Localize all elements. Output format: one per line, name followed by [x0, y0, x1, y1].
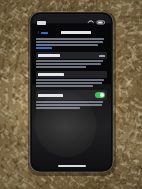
button[interactable] — [36, 52, 107, 59]
button[interactable]: Back — [36, 30, 49, 35]
button[interactable] — [36, 71, 107, 78]
button[interactable] — [36, 90, 107, 100]
